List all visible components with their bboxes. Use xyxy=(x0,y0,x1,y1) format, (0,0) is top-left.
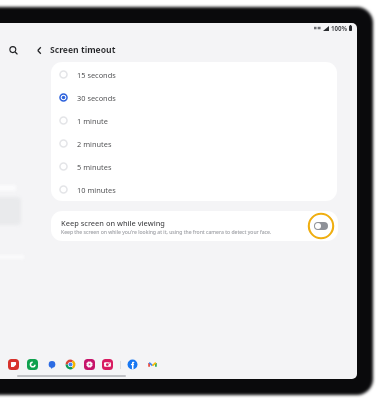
staticText: 30 seconds xyxy=(77,93,116,103)
staticText: 1 minute xyxy=(77,116,108,126)
button[interactable]: 10 minutes xyxy=(51,178,337,201)
staticText: Keep screen on while viewing xyxy=(61,218,165,228)
button[interactable]: Navigate up xyxy=(29,40,49,60)
staticText: 2 minutes xyxy=(77,139,112,149)
staticText: 100% xyxy=(331,24,348,32)
button[interactable]: Samsung Notes xyxy=(8,359,19,370)
button[interactable]: 2 minutes xyxy=(51,132,337,155)
staticText: 15 seconds xyxy=(77,70,116,80)
button[interactable]: Gmail xyxy=(148,360,157,369)
button[interactable]: 1 minute xyxy=(51,109,337,132)
button[interactable]: Keep screen on while viewing xyxy=(314,222,328,230)
button[interactable]: 15 seconds xyxy=(51,63,337,86)
button[interactable]: Facebook xyxy=(127,359,138,370)
button[interactable]: 30 seconds xyxy=(51,86,337,109)
button[interactable]: Phone xyxy=(27,359,38,370)
staticText: 5 minutes xyxy=(77,162,112,172)
button[interactable]: Keep screen on while viewing xyxy=(51,211,338,241)
button[interactable]: Search xyxy=(3,40,23,60)
button[interactable]: Camera xyxy=(102,359,113,370)
staticText: Screen timeout xyxy=(50,44,116,56)
staticText: 10 minutes xyxy=(77,185,116,195)
staticText: Keep the screen on while you're looking … xyxy=(61,229,272,236)
button[interactable]: 5 minutes xyxy=(51,155,337,178)
button[interactable]: Messages xyxy=(47,360,57,370)
button[interactable]: Gallery xyxy=(84,359,95,370)
button[interactable]: Chrome xyxy=(65,359,76,370)
